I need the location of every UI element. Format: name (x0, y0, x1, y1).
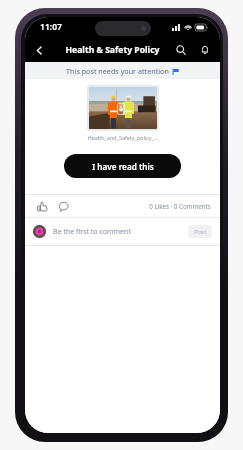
button[interactable]: Be the first to comment (53, 227, 188, 237)
staticText: 0 Likes · 0 Comments (149, 202, 211, 210)
staticText: This post needs your attention (66, 66, 169, 76)
staticText: Health_and_Safety_policy_M... (87, 134, 159, 141)
staticText: Be the first to comment (53, 227, 131, 237)
button[interactable]: Back (30, 41, 48, 59)
button[interactable]: Post (188, 225, 212, 238)
button[interactable]: Attachment preview (89, 87, 157, 129)
button[interactable]: Search (172, 41, 190, 59)
button[interactable]: Comment (55, 198, 71, 214)
staticText: I have read this (92, 161, 154, 172)
button[interactable]: Your profile (33, 225, 46, 238)
staticText: 11:07 (40, 21, 62, 33)
button[interactable]: Like (34, 198, 50, 214)
button[interactable]: Notifications (196, 41, 214, 59)
button[interactable]: I have read this (64, 154, 181, 178)
staticText: Health & Safety Policy (65, 44, 160, 56)
staticText: Post (194, 228, 207, 236)
